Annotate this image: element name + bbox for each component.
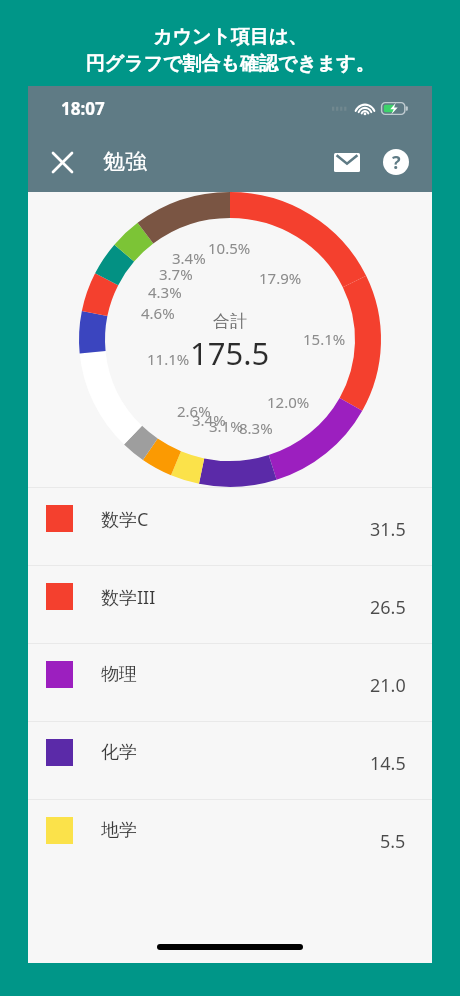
staticText: 3.4% [172, 248, 206, 268]
staticText: 31.5 [370, 517, 406, 542]
button[interactable]: Help [373, 139, 419, 185]
staticText: 2.6% [177, 401, 211, 421]
button[interactable]: Mail [324, 139, 370, 185]
staticText: 17.9% [259, 268, 302, 288]
staticText: 8.3% [239, 418, 273, 438]
staticText: 化学 [101, 741, 137, 764]
staticText: 3.4% [192, 410, 226, 430]
staticText: 14.5 [370, 751, 406, 776]
staticText: 地学 [101, 819, 137, 842]
button[interactable]: Close [39, 139, 85, 185]
staticText: 15.1% [303, 329, 346, 349]
staticText: 勉強 [103, 148, 147, 176]
staticText: カウント項目は、 円グラフで割合も確認できます。 [85, 25, 375, 76]
staticText: 18:07 [61, 97, 105, 120]
staticText: 3.1% [209, 416, 243, 436]
staticText: 4.3% [148, 282, 182, 302]
staticText: ? [392, 150, 401, 175]
staticText: 3.7% [159, 264, 193, 284]
button[interactable]: 物理 [28, 644, 432, 721]
staticText: 11.1% [147, 349, 190, 369]
button[interactable]: 数学III [28, 566, 432, 643]
staticText: 数学III [101, 585, 156, 610]
staticText: 5.5 [380, 829, 406, 854]
staticText: 4.6% [141, 303, 175, 323]
button[interactable]: 化学 [28, 722, 432, 799]
button[interactable]: 数学C [28, 488, 432, 565]
staticText: 合計 [213, 311, 247, 332]
button[interactable]: 地学 [28, 800, 432, 877]
staticText: 数学C [101, 507, 149, 532]
staticText: 12.0% [267, 392, 310, 412]
staticText: 175.5 [190, 332, 270, 374]
staticText: 物理 [101, 663, 137, 686]
staticText: 21.0 [370, 673, 406, 698]
staticText: 10.5% [208, 238, 251, 258]
staticText: 26.5 [370, 595, 406, 620]
